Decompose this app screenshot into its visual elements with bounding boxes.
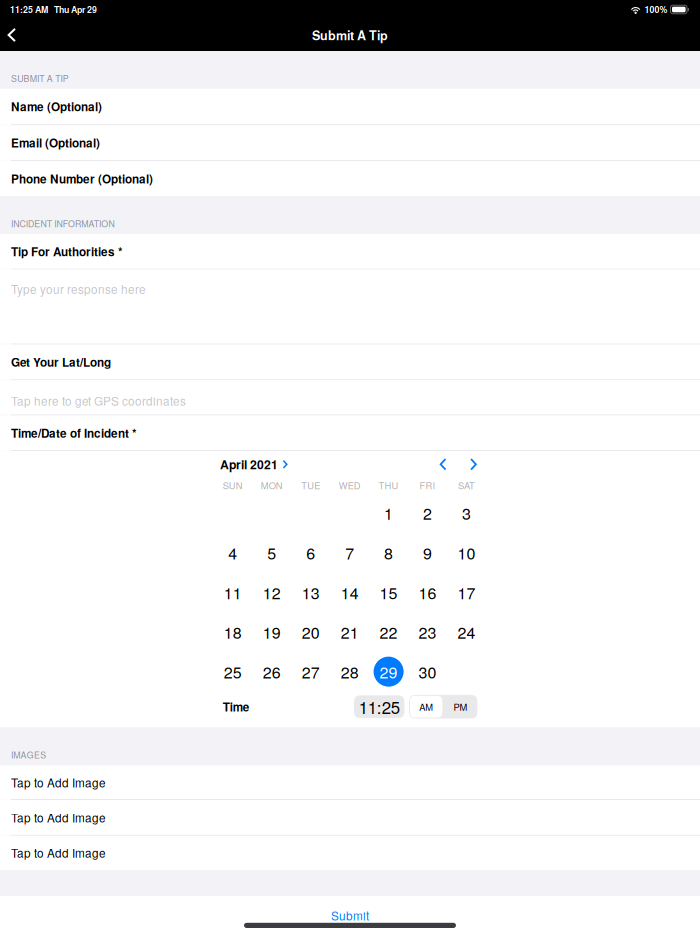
staticText: Submit [331,907,369,924]
staticText: 26 [263,660,281,683]
button[interactable]: 13 [291,572,330,612]
button[interactable]: 1 [369,493,408,533]
staticText: 22 [380,620,398,643]
button[interactable]: 8 [369,533,408,572]
staticText: PM [453,700,467,713]
staticText: Name (Optional) [11,98,102,115]
button[interactable]: Time/Date of Incident * [0,415,700,450]
staticText: 12 [263,581,281,604]
staticText: 25 [224,660,242,683]
staticText: 17 [457,581,475,604]
staticText: SUBMIT A TIP [11,72,69,85]
button[interactable]: Get Your Lat/Long [0,344,700,379]
staticText: Submit A Tip [312,26,388,44]
button[interactable]: 27 [291,652,330,691]
button[interactable]: 30 [408,652,447,691]
staticText: 27 [302,660,320,683]
staticText: 6 [306,541,315,564]
staticText: 11:25 AM [10,3,48,16]
staticText: 11 [224,581,242,604]
staticText: 21 [341,620,359,643]
staticText: Time/Date of Incident * [11,424,137,441]
button[interactable]: Phone Number (Optional) [0,161,700,196]
button[interactable]: 26 [252,652,291,691]
button[interactable]: 2 [408,493,447,533]
button[interactable]: 4 [213,533,252,572]
staticText: Email (Optional) [11,134,100,151]
button[interactable]: 14 [330,572,369,612]
staticText: 11:25 [359,695,400,719]
button[interactable]: Name (Optional) [0,89,700,124]
staticText: 28 [341,660,359,683]
button[interactable]: AM [409,695,443,719]
button[interactable]: Tap to Add Image [0,800,700,835]
button[interactable]: Submit [0,896,700,934]
staticText: 5 [267,541,276,564]
button[interactable]: 15 [369,572,408,612]
staticText: 7 [345,541,354,564]
staticText: 15 [380,581,398,604]
staticText: April 2021 [220,456,278,473]
staticText: 3 [462,501,471,524]
button[interactable]: 28 [330,652,369,691]
button[interactable]: 17 [447,572,486,612]
staticText: 9 [423,541,432,564]
button[interactable]: PM [443,696,478,718]
button[interactable]: 16 [408,572,447,612]
button[interactable]: 19 [252,612,291,652]
button[interactable]: 11:25 [354,695,404,718]
staticText: Time [223,698,250,715]
button[interactable]: Tap here to get GPS coordinates [0,380,700,415]
staticText: Phone Number (Optional) [11,170,153,187]
staticText: 29 [380,660,398,683]
button[interactable]: Tip For Authorities * [0,234,700,269]
button[interactable]: 5 [252,533,291,572]
button[interactable]: Email (Optional) [0,125,700,160]
button[interactable]: April 2021 [220,451,288,477]
button[interactable]: 3 [447,493,486,533]
staticText: 19 [263,620,281,643]
button[interactable]: Tap to Add Image [0,765,700,799]
button[interactable]: Tap to Add Image [0,836,700,870]
button[interactable]: 9 [408,533,447,572]
staticText: SUN [223,479,243,492]
button[interactable]: 7 [330,533,369,572]
staticText: AM [419,700,433,713]
staticText: FRI [419,479,435,492]
staticText: 24 [457,620,475,643]
button[interactable]: 24 [447,612,486,652]
button[interactable]: 10 [447,533,486,572]
button[interactable]: 29 [369,652,408,691]
staticText: 14 [341,581,359,604]
staticText: Get Your Lat/Long [11,354,111,370]
button[interactable]: 20 [291,612,330,652]
staticText: MON [261,479,283,492]
staticText: 10 [457,541,475,564]
staticText: INCIDENT INFORMATION [11,217,115,230]
button[interactable]: 21 [330,612,369,652]
button[interactable]: Next month [460,451,487,477]
staticText: Tap to Add Image [11,809,106,826]
staticText: Thu Apr 29 [54,3,97,16]
staticText: 18 [224,620,242,643]
button[interactable]: 23 [408,612,447,652]
staticText: Tip For Authorities * [11,243,123,260]
staticText: 16 [418,581,436,604]
button[interactable]: 12 [252,572,291,612]
button[interactable]: Back [0,19,28,51]
staticText: IMAGES [11,748,46,761]
button[interactable]: 18 [213,612,252,652]
button[interactable]: 11 [213,572,252,612]
button[interactable]: 22 [369,612,408,652]
staticText: 4 [228,541,237,564]
staticText: 23 [418,620,436,643]
staticText: 13 [302,581,320,604]
button[interactable]: 25 [213,652,252,691]
staticText: 20 [302,620,320,643]
staticText: 100% [644,3,667,16]
button[interactable]: Previous month [433,451,460,477]
button[interactable]: 6 [291,533,330,572]
staticText: TUE [301,479,320,492]
staticText: 8 [384,541,393,564]
button[interactable]: Type your response here [0,270,700,344]
